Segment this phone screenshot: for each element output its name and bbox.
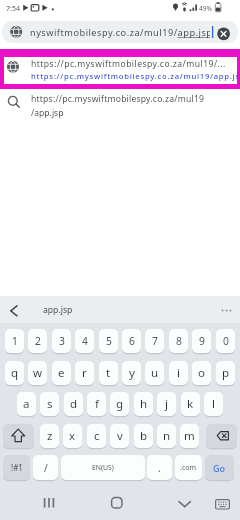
button[interactable]: z (40, 424, 59, 448)
staticText: j (165, 396, 168, 412)
staticText: nyswiftmobilespy.co.za/mul19/app.jsp (30, 26, 210, 39)
button[interactable]: y (122, 361, 141, 385)
button[interactable]: app.jsp (28, 296, 88, 323)
staticText: 9 (199, 334, 205, 348)
staticText: https://pc.myswiftmobilespy.co.za/mul19/… (31, 58, 226, 69)
button[interactable] (208, 488, 238, 518)
button[interactable]: q (5, 361, 24, 385)
staticText: m (184, 428, 195, 444)
button[interactable]: . (147, 455, 172, 480)
staticText: !#1 (11, 462, 23, 473)
staticText: 2 (35, 334, 41, 348)
button[interactable]: e (52, 361, 71, 385)
staticText: / (44, 461, 48, 475)
button[interactable]: 6 (122, 329, 141, 353)
staticText: t (106, 365, 111, 381)
button[interactable] (34, 488, 64, 518)
staticText: e (58, 365, 65, 381)
button[interactable]: Go (205, 455, 234, 480)
staticText: z (47, 428, 53, 444)
staticText: d (70, 396, 78, 412)
button[interactable] (215, 25, 232, 42)
button[interactable]: 3 (52, 329, 71, 353)
staticText: 0 (223, 334, 229, 348)
button[interactable]: 5 (99, 329, 118, 353)
button[interactable]: j (157, 392, 176, 416)
button[interactable]: k (181, 392, 200, 416)
button[interactable]: d (64, 392, 83, 416)
button[interactable]: n (157, 424, 176, 448)
button[interactable]: h (134, 392, 153, 416)
button[interactable] (170, 488, 200, 518)
button[interactable]: m (180, 424, 199, 448)
button[interactable]: b (134, 424, 153, 448)
staticText: h (140, 396, 148, 412)
button[interactable]: c (87, 424, 106, 448)
button[interactable]: 8 (169, 329, 188, 353)
button[interactable]: r (75, 361, 94, 385)
button[interactable]: !#1 (3, 455, 30, 480)
staticText: 7 (152, 334, 158, 348)
button[interactable]: p (216, 361, 235, 385)
button[interactable] (102, 488, 132, 518)
staticText: y (129, 365, 135, 381)
button[interactable]: f (87, 392, 106, 416)
staticText: c (94, 428, 100, 444)
button[interactable]: x (63, 424, 82, 448)
button[interactable] (0, 89, 240, 125)
staticText: 49% (199, 4, 213, 13)
staticText: https://pc.myswiftmobilespy.co.za/mul19/… (31, 71, 238, 81)
staticText: 6 (129, 334, 135, 348)
staticText: . (158, 461, 161, 475)
button[interactable]: l (204, 392, 223, 416)
button[interactable]: g (110, 392, 129, 416)
button[interactable] (2, 21, 238, 43)
staticText: /app.jsp (31, 107, 64, 118)
button[interactable] (206, 424, 237, 448)
staticText: w (33, 365, 43, 381)
staticText: o (198, 365, 205, 381)
staticText: f (95, 396, 99, 412)
button[interactable]: 1 (5, 329, 24, 353)
button[interactable] (214, 299, 236, 321)
button[interactable]: 7 (145, 329, 164, 353)
staticText: 5 (106, 334, 112, 348)
button[interactable]: a (17, 392, 36, 416)
staticText: 3 (59, 334, 65, 348)
staticText: l (212, 396, 215, 412)
button[interactable]: o (192, 361, 211, 385)
button[interactable] (4, 57, 237, 84)
button[interactable] (4, 299, 26, 321)
staticText: Go (213, 462, 226, 474)
button[interactable]: v (110, 424, 129, 448)
staticText: n (163, 428, 171, 444)
staticText: g (116, 396, 124, 412)
staticText: a (23, 396, 30, 412)
button[interactable]: 9 (192, 329, 211, 353)
staticText: u (151, 365, 159, 381)
staticText: k (187, 396, 194, 412)
button[interactable]: w (28, 361, 47, 385)
button[interactable]: s (40, 392, 59, 416)
button[interactable]: i (169, 361, 188, 385)
staticText: s (47, 396, 53, 412)
button[interactable]: 0 (216, 329, 235, 353)
button[interactable]: EN(US) (61, 455, 145, 480)
button[interactable]: t (99, 361, 118, 385)
staticText: i (177, 365, 180, 381)
button[interactable]: 2 (28, 329, 47, 353)
button[interactable]: .com (175, 455, 202, 480)
staticText: https://pc.myswiftmobilespy.co.za/mul19 (31, 93, 205, 104)
staticText: x (69, 428, 76, 444)
button[interactable]: 4 (75, 329, 94, 353)
staticText: b (140, 428, 148, 444)
staticText: q (11, 365, 19, 381)
staticText: EN(US) (92, 463, 114, 472)
button[interactable] (3, 424, 34, 448)
button[interactable]: u (145, 361, 164, 385)
staticText: .com (180, 463, 197, 473)
button[interactable]: / (33, 455, 58, 480)
staticText: p (222, 365, 230, 381)
staticText: v (117, 428, 123, 444)
staticText: 8 (176, 334, 182, 348)
